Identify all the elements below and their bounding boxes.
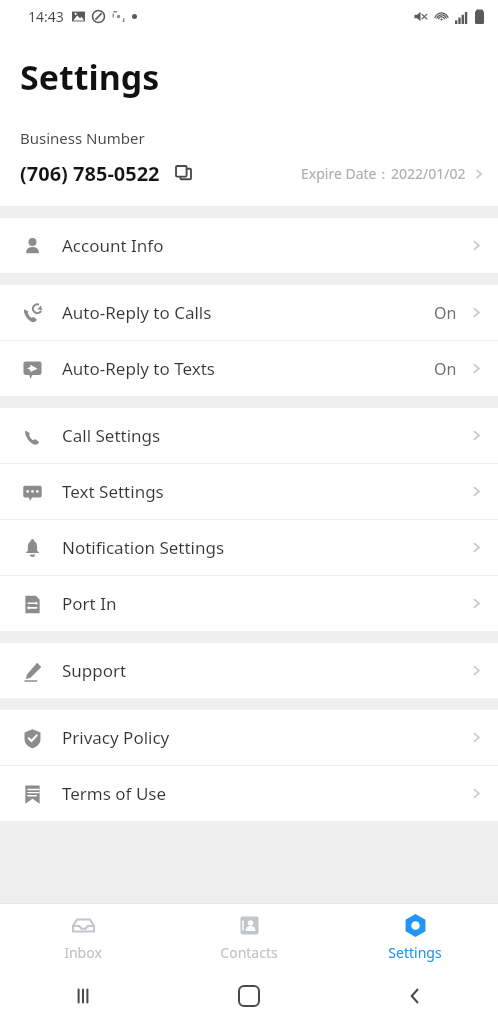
staticText: Settings — [388, 943, 442, 962]
staticText: Call Settings — [62, 424, 161, 447]
button[interactable]: Expire Date： — [301, 160, 486, 187]
staticText: Business Number — [20, 128, 145, 148]
staticText: Inbox — [64, 943, 102, 962]
staticText: Expire Date： — [301, 164, 391, 183]
button[interactable]: Text Settings — [0, 464, 498, 519]
button[interactable]: Support — [0, 643, 498, 698]
button[interactable]: Call Settings — [0, 408, 498, 463]
staticText: On — [434, 302, 457, 324]
button[interactable]: Notification Settings — [0, 520, 498, 575]
staticText: Port In — [62, 592, 117, 615]
staticText: On — [434, 358, 457, 380]
button[interactable]: Account Info — [0, 218, 498, 273]
button[interactable]: Auto-Reply to Calls — [0, 285, 498, 340]
staticText: Terms of Use — [62, 782, 167, 805]
button[interactable]: Auto-Reply to Texts — [0, 341, 498, 396]
button[interactable]: Contacts — [166, 904, 332, 967]
button[interactable]: Port In — [0, 576, 498, 631]
staticText: Settings — [20, 54, 160, 100]
staticText: Notification Settings — [62, 536, 225, 559]
staticText: 14:43 — [28, 7, 64, 26]
staticText: Auto-Reply to Calls — [62, 301, 212, 324]
staticText: Privacy Policy — [62, 726, 170, 749]
button[interactable]: Copy number — [170, 160, 196, 186]
staticText: (706) 785-0522 — [20, 160, 160, 187]
staticText: Support — [62, 659, 127, 682]
button[interactable]: Settings — [332, 904, 498, 967]
staticText: Text Settings — [62, 480, 164, 503]
button[interactable]: Terms of Use — [0, 766, 498, 821]
button[interactable]: Inbox — [0, 904, 166, 967]
staticText: Contacts — [220, 943, 278, 962]
button[interactable]: Privacy Policy — [0, 710, 498, 765]
staticText: Account Info — [62, 234, 164, 257]
staticText: 2022/01/02 — [391, 164, 466, 183]
staticText: Auto-Reply to Texts — [62, 357, 215, 380]
